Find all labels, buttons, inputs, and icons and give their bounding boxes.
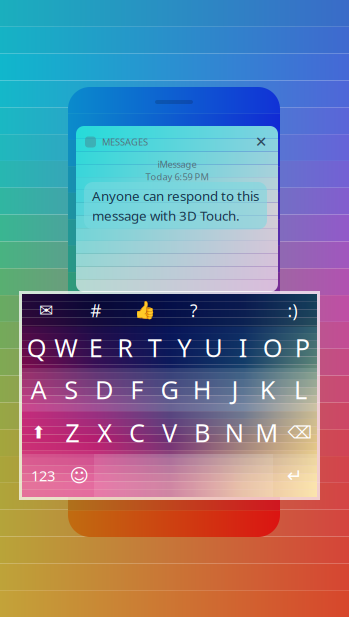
staticText: M xyxy=(255,416,278,449)
staticText: ⬆ xyxy=(31,423,46,442)
button[interactable]: Smiley xyxy=(268,294,317,327)
staticText: A xyxy=(30,373,46,406)
staticText: ✕ xyxy=(255,134,267,150)
staticText: O xyxy=(263,331,283,364)
staticText: W xyxy=(54,331,78,364)
button[interactable]: Shift xyxy=(22,411,56,454)
button[interactable]: Dismiss notification xyxy=(253,134,269,150)
staticText: C xyxy=(129,416,145,449)
staticText: H xyxy=(193,373,212,406)
staticText: X xyxy=(97,416,112,449)
staticText: 👍 xyxy=(134,301,156,320)
staticText: P xyxy=(295,331,310,364)
staticText: 123 xyxy=(31,466,55,485)
staticText: ↵ xyxy=(287,465,303,486)
button[interactable]: J xyxy=(219,368,251,411)
button[interactable]: Z xyxy=(56,411,88,454)
button[interactable]: Apple xyxy=(219,294,268,327)
button[interactable]: F xyxy=(120,368,153,411)
button[interactable]: 123 xyxy=(22,454,64,497)
staticText: F xyxy=(130,373,143,406)
button[interactable]: Help xyxy=(169,294,219,327)
button[interactable]: X xyxy=(88,411,121,454)
button[interactable]: P xyxy=(287,327,317,368)
staticText: E xyxy=(89,331,103,364)
button[interactable]: C xyxy=(121,411,153,454)
button[interactable]: I xyxy=(228,327,258,368)
button[interactable]: T xyxy=(140,327,169,368)
staticText: T xyxy=(148,331,162,364)
button[interactable]: R xyxy=(110,327,140,368)
staticText: Y xyxy=(177,331,191,364)
staticText: :) xyxy=(287,299,297,322)
button[interactable]: O xyxy=(258,327,287,368)
button[interactable]: E xyxy=(81,327,110,368)
button[interactable]: H xyxy=(186,368,219,411)
staticText: ✉ xyxy=(39,301,54,320)
staticText: Z xyxy=(65,416,79,449)
staticText: U xyxy=(204,331,223,364)
button[interactable]: M xyxy=(251,411,283,454)
button[interactable]: D xyxy=(88,368,120,411)
staticText: iMessage xyxy=(157,158,196,170)
button[interactable]: Y xyxy=(169,327,199,368)
button[interactable]: U xyxy=(199,327,228,368)
staticText: # xyxy=(90,299,101,322)
button[interactable]: W xyxy=(51,327,81,368)
staticText: B xyxy=(194,416,210,449)
button[interactable]: Q xyxy=(22,327,51,368)
staticText: K xyxy=(260,373,276,406)
button[interactable]: K xyxy=(251,368,284,411)
button[interactable]: Hashtag xyxy=(71,294,120,327)
staticText: Q xyxy=(27,331,47,364)
button[interactable]: Emoji xyxy=(64,454,94,497)
staticText: N xyxy=(225,416,244,449)
button[interactable]: N xyxy=(218,411,250,454)
button[interactable]: A xyxy=(22,368,55,411)
staticText: J xyxy=(232,373,239,406)
staticText: MESSAGES xyxy=(102,136,148,148)
staticText: L xyxy=(294,373,307,406)
button[interactable]: Delete xyxy=(283,411,317,454)
staticText: ⌫ xyxy=(287,423,312,442)
staticText: ☺ xyxy=(69,465,88,486)
staticText: Anyone can respond to this xyxy=(92,187,259,205)
button[interactable]: V xyxy=(153,411,186,454)
staticText: I xyxy=(239,331,248,364)
staticText: V xyxy=(162,416,177,449)
button[interactable]: G xyxy=(153,368,186,411)
button[interactable]: L xyxy=(284,368,317,411)
staticText: message with 3D Touch. xyxy=(92,207,240,224)
staticText: R xyxy=(117,331,133,364)
staticText: ? xyxy=(190,299,198,322)
button[interactable]: Return xyxy=(273,454,317,497)
staticText: Today 6:59 PM xyxy=(145,170,208,183)
button[interactable]: Space xyxy=(94,454,273,497)
staticText: D xyxy=(95,373,113,406)
button[interactable]: S xyxy=(55,368,88,411)
staticText: G xyxy=(160,373,178,406)
button[interactable]: B xyxy=(186,411,218,454)
button[interactable]: Thumbs up xyxy=(120,294,169,327)
staticText: S xyxy=(64,373,78,406)
button[interactable]: Mail xyxy=(22,294,71,327)
